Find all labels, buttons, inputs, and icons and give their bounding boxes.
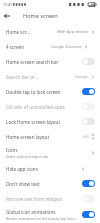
staticText: Select style and adjust size [6, 154, 49, 159]
button[interactable]: Remove text from widgets [0, 191, 100, 206]
button[interactable]: Search bar provider [0, 69, 100, 84]
button[interactable]: Don't show text [0, 176, 100, 191]
button[interactable]: Double tap to lock screen [0, 84, 100, 99]
staticText: Remove text from widgets [6, 196, 82, 202]
button[interactable]: Fill cells of uninstalled apps [0, 99, 100, 114]
staticText: Home screen layout [6, 134, 83, 140]
button[interactable]: Icons [0, 144, 100, 161]
staticText: Icons [6, 147, 18, 153]
staticText: Hide app icons [6, 166, 38, 172]
staticText: Render animations on third party app ico… [6, 216, 76, 221]
button[interactable]: Lock Home screen layout [0, 114, 100, 129]
staticText: Double tap to lock screen [6, 89, 82, 95]
button[interactable]: Hide app icons [0, 161, 100, 176]
button[interactable]: Home screen layout [0, 129, 100, 144]
button[interactable]: 4 screen [0, 39, 100, 54]
staticText: With App drawer [57, 29, 89, 34]
button[interactable]: Back [0, 9, 13, 22]
staticText: Fill cells of uninstalled apps [6, 104, 82, 110]
staticText: Search bar provider [6, 74, 40, 80]
staticText: Home screen [23, 12, 58, 20]
button[interactable]: Home screen search bar [0, 54, 100, 69]
staticText: Home screen [6, 29, 31, 35]
button[interactable]: Home screen [0, 24, 100, 39]
button[interactable]: Global icon animations [0, 206, 100, 223]
staticText: Google Discover [51, 44, 82, 49]
staticText: Google [75, 74, 89, 79]
staticText: 4 screen [6, 44, 25, 50]
staticText: Home screen search bar [6, 59, 82, 65]
staticText: Global icon animations [6, 209, 56, 215]
staticText: 11:41 [3, 2, 12, 7]
staticText: 4x5 [83, 134, 90, 139]
button[interactable]: Change layout [91, 133, 95, 140]
staticText: Don't show text [6, 181, 82, 187]
staticText: Lock Home screen layout [6, 119, 82, 125]
